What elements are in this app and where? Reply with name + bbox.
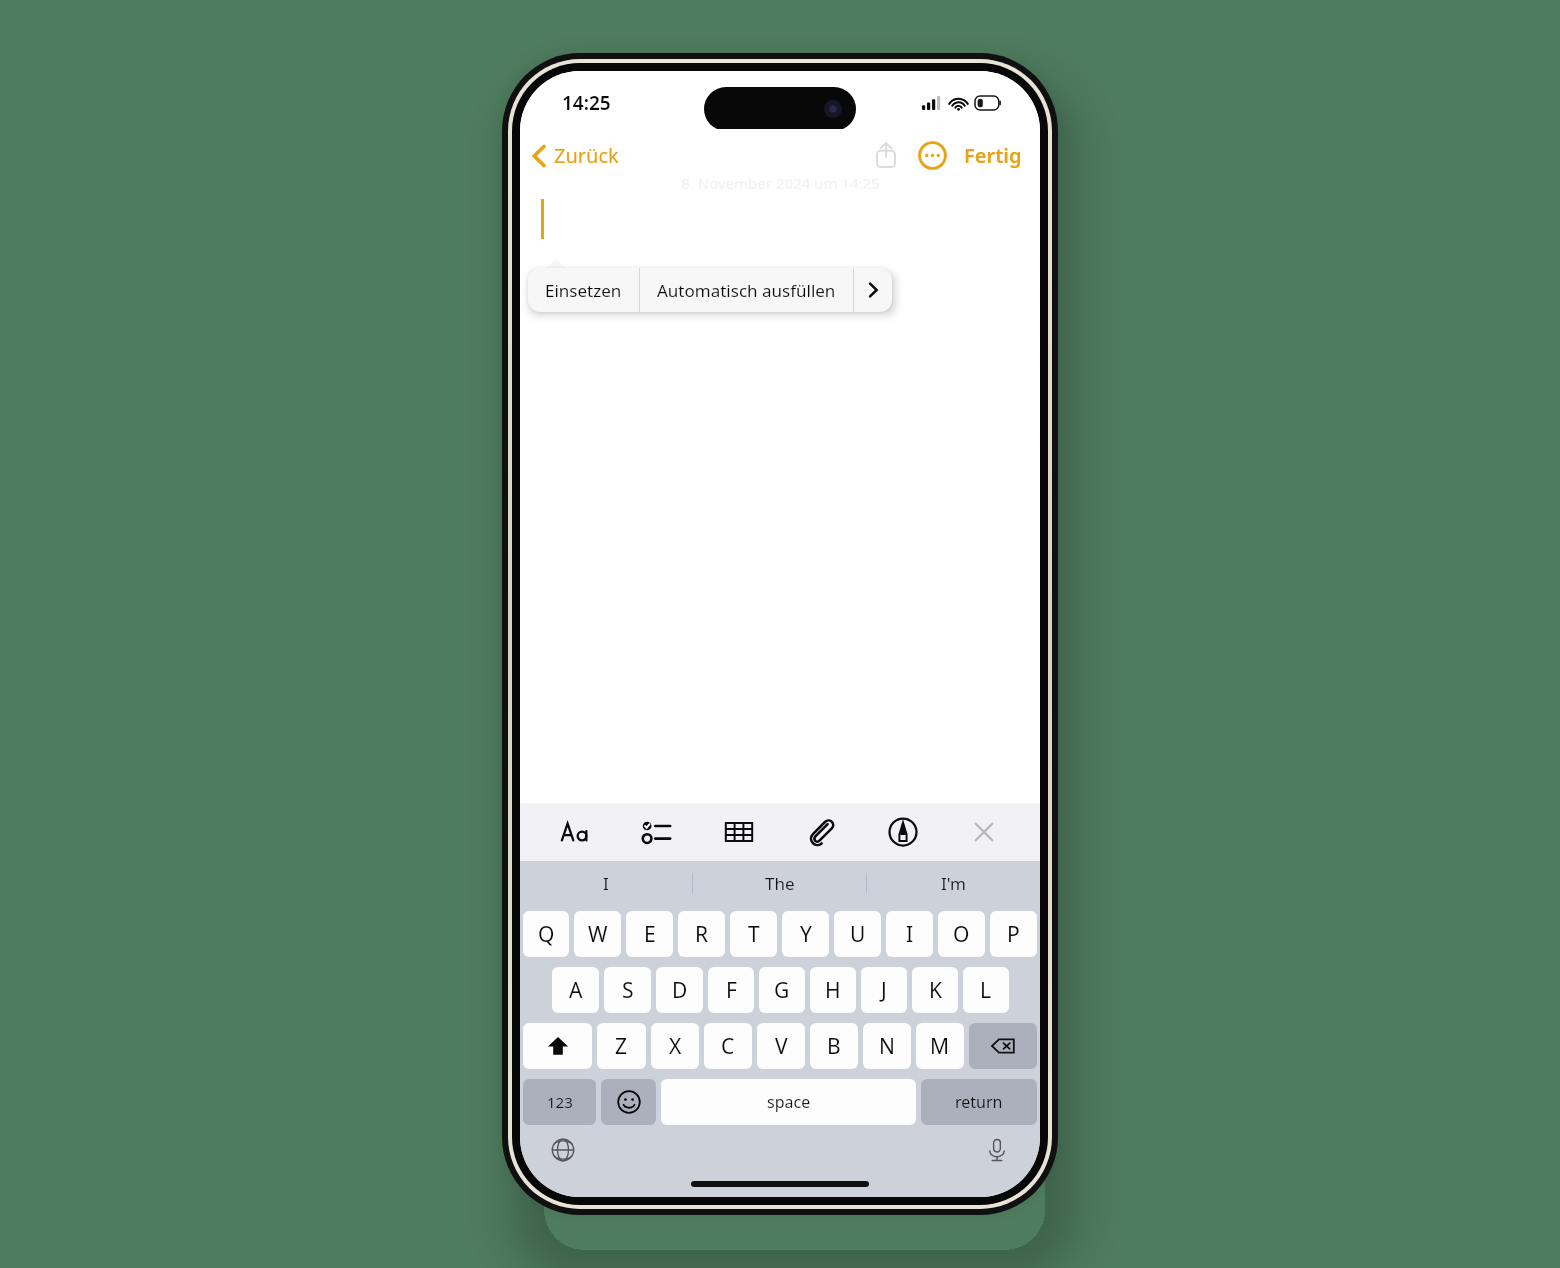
button[interactable]: E bbox=[626, 911, 673, 957]
staticText: The bbox=[765, 872, 795, 895]
button[interactable]: Q bbox=[523, 911, 569, 957]
staticText: F bbox=[726, 976, 737, 1005]
staticText: return bbox=[955, 1091, 1003, 1113]
staticText: H bbox=[825, 976, 841, 1005]
button[interactable]: I bbox=[886, 911, 933, 957]
button[interactable]: F bbox=[708, 967, 754, 1013]
staticText: U bbox=[850, 920, 866, 949]
staticText: Einsetzen bbox=[545, 279, 622, 302]
button[interactable]: M bbox=[916, 1023, 964, 1069]
staticText: I bbox=[906, 920, 914, 949]
staticText: C bbox=[721, 1032, 735, 1061]
button[interactable]: space bbox=[661, 1079, 916, 1125]
button[interactable]: N bbox=[863, 1023, 911, 1069]
button[interactable]: R bbox=[678, 911, 725, 957]
button[interactable]: G bbox=[759, 967, 805, 1013]
staticText: Automatisch ausfüllen bbox=[657, 279, 836, 302]
button[interactable]: H bbox=[810, 967, 856, 1013]
staticText: J bbox=[881, 976, 887, 1005]
button[interactable]: Sprache wechseln bbox=[542, 1129, 584, 1171]
staticText: Z bbox=[615, 1032, 628, 1061]
button[interactable]: The bbox=[693, 861, 866, 905]
staticText: R bbox=[695, 920, 709, 949]
button[interactable]: Textformat bbox=[550, 806, 602, 858]
staticText: G bbox=[774, 976, 790, 1005]
staticText: M bbox=[930, 1032, 950, 1061]
staticText: K bbox=[929, 976, 942, 1005]
staticText: E bbox=[644, 920, 656, 949]
staticText: A bbox=[569, 976, 583, 1005]
button[interactable]: O bbox=[938, 911, 985, 957]
button[interactable]: Teilen bbox=[864, 133, 908, 177]
button[interactable]: Zurück bbox=[520, 136, 629, 175]
staticText: S bbox=[622, 976, 634, 1005]
button[interactable]: Y bbox=[782, 911, 829, 957]
staticText: X bbox=[669, 1032, 682, 1061]
button[interactable]: I bbox=[520, 861, 692, 905]
button[interactable]: W bbox=[574, 911, 621, 957]
staticText: Y bbox=[800, 920, 812, 949]
staticText: O bbox=[953, 920, 970, 949]
button[interactable]: 123 bbox=[523, 1079, 596, 1125]
staticText: Q bbox=[538, 920, 555, 949]
staticText: space bbox=[767, 1091, 811, 1113]
button[interactable]: Schließen bbox=[958, 806, 1010, 858]
button[interactable]: Fertig bbox=[958, 136, 1028, 175]
staticText: W bbox=[588, 920, 608, 949]
button[interactable]: Umschalt bbox=[523, 1023, 592, 1069]
staticText: B bbox=[827, 1032, 841, 1061]
button[interactable]: Emoji bbox=[601, 1079, 656, 1125]
button[interactable]: Z bbox=[597, 1023, 646, 1069]
button[interactable]: Tabelle bbox=[713, 806, 765, 858]
button[interactable]: Automatisch ausfüllen bbox=[640, 268, 853, 312]
button[interactable]: D bbox=[656, 967, 703, 1013]
staticText: I'm bbox=[941, 872, 966, 895]
button[interactable]: Mehr bbox=[910, 133, 954, 177]
staticText: 14:25 bbox=[562, 90, 611, 116]
button[interactable]: C bbox=[704, 1023, 752, 1069]
staticText: 8. November 2024 um 14:25 bbox=[681, 173, 880, 193]
button[interactable]: I'm bbox=[867, 861, 1040, 905]
staticText: N bbox=[879, 1032, 895, 1061]
button[interactable]: P bbox=[990, 911, 1037, 957]
staticText: P bbox=[1007, 920, 1020, 949]
button[interactable]: A bbox=[552, 967, 599, 1013]
staticText: Zurück bbox=[554, 142, 619, 169]
staticText: V bbox=[775, 1032, 788, 1061]
button[interactable]: V bbox=[757, 1023, 805, 1069]
button[interactable]: Diktieren bbox=[976, 1129, 1018, 1171]
staticText: I bbox=[603, 872, 609, 895]
staticText: L bbox=[980, 976, 992, 1005]
staticText: T bbox=[748, 920, 760, 949]
button[interactable]: B bbox=[810, 1023, 858, 1069]
button[interactable]: Löschen bbox=[969, 1023, 1037, 1069]
staticText: Fertig bbox=[964, 142, 1022, 169]
button[interactable]: X bbox=[651, 1023, 699, 1069]
button[interactable]: U bbox=[834, 911, 881, 957]
button[interactable]: Markierung bbox=[877, 806, 929, 858]
button[interactable]: T bbox=[730, 911, 777, 957]
button[interactable]: J bbox=[861, 967, 907, 1013]
button[interactable]: Anhang bbox=[795, 806, 847, 858]
button[interactable]: return bbox=[921, 1079, 1037, 1125]
staticText: 123 bbox=[547, 1092, 573, 1112]
button[interactable]: Checkliste bbox=[631, 806, 683, 858]
button[interactable]: Einsetzen bbox=[528, 268, 639, 312]
button[interactable]: S bbox=[604, 967, 651, 1013]
staticText: D bbox=[672, 976, 688, 1005]
button[interactable]: Mehr Optionen bbox=[854, 268, 892, 312]
button[interactable]: K bbox=[912, 967, 958, 1013]
button[interactable]: L bbox=[963, 967, 1009, 1013]
